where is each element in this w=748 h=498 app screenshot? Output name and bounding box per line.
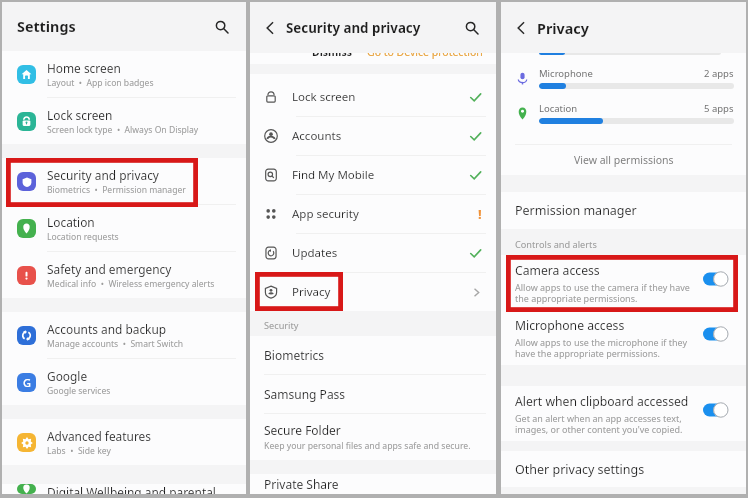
staticText: Microphone bbox=[539, 67, 704, 80]
staticText: Labs • Side key bbox=[47, 445, 111, 457]
staticText: Settings bbox=[17, 17, 76, 36]
staticText: Permission manager bbox=[515, 202, 637, 219]
button[interactable]: Digital Wellbeing and parental bbox=[2, 484, 246, 494]
staticText: 5 apps bbox=[704, 102, 734, 115]
staticText: Location requests bbox=[47, 231, 119, 243]
button[interactable]: Biometrics bbox=[250, 336, 496, 374]
button[interactable]: Camera access bbox=[501, 255, 746, 310]
staticText: Accounts and backup bbox=[47, 321, 167, 337]
staticText: Manage accounts • Smart Switch bbox=[47, 338, 184, 350]
staticText: Controls and alerts bbox=[515, 238, 597, 251]
staticText: Security and privacy bbox=[286, 19, 421, 37]
staticText: Secure Folder bbox=[264, 422, 341, 438]
button[interactable]: Location bbox=[501, 95, 746, 130]
staticText: Advanced features bbox=[47, 428, 151, 444]
button[interactable]: Safety and emergency bbox=[2, 252, 246, 298]
button[interactable]: Microphone bbox=[501, 60, 746, 95]
staticText: Location bbox=[539, 102, 704, 115]
staticText: Home screen bbox=[47, 60, 121, 76]
button[interactable]: Security and privacy bbox=[2, 158, 246, 204]
button[interactable]: Private Share bbox=[250, 474, 496, 494]
button[interactable]: Lock screen bbox=[250, 78, 496, 116]
staticText: Samsung Pass bbox=[264, 386, 346, 402]
staticText: View all permissions bbox=[574, 153, 674, 167]
staticText: Digital Wellbeing and parental bbox=[47, 484, 216, 494]
button[interactable]: Toggle Camera access bbox=[703, 271, 728, 287]
button[interactable]: Search bbox=[459, 15, 485, 41]
staticText: ! bbox=[478, 205, 482, 223]
button[interactable]: Advanced features bbox=[2, 419, 246, 465]
staticText: Find My Mobile bbox=[292, 167, 469, 183]
button[interactable]: Lock screen bbox=[2, 98, 246, 144]
button[interactable]: Alert when clipboard accessed bbox=[501, 386, 746, 441]
staticText: Microphone access bbox=[515, 317, 625, 334]
button[interactable]: Other privacy settings bbox=[501, 451, 746, 487]
button[interactable]: Navigate up bbox=[509, 16, 533, 40]
staticText: Updates bbox=[292, 245, 469, 261]
staticText: Keep your personal files and apps safe a… bbox=[264, 440, 471, 452]
staticText: App security bbox=[292, 206, 478, 222]
staticText: Camera access bbox=[515, 262, 600, 279]
staticText: Google bbox=[47, 368, 88, 384]
button[interactable]: Accounts bbox=[250, 117, 496, 155]
staticText: Alert when clipboard accessed bbox=[515, 393, 689, 410]
staticText: Lock screen bbox=[292, 89, 469, 105]
staticText: Private Share bbox=[264, 476, 339, 492]
button[interactable]: Toggle Alert when clipboard accessed bbox=[703, 402, 728, 418]
staticText: Get an alert when an app accesses text, … bbox=[515, 412, 683, 435]
staticText: G bbox=[23, 375, 31, 390]
button[interactable]: G bbox=[2, 359, 246, 405]
button[interactable]: Privacy bbox=[250, 273, 496, 311]
staticText: Layout • App icon badges bbox=[47, 77, 154, 89]
staticText: Security bbox=[264, 319, 299, 332]
button[interactable]: Accounts and backup bbox=[2, 312, 246, 358]
button[interactable]: Home screen bbox=[2, 51, 246, 97]
staticText: Location bbox=[47, 214, 95, 230]
staticText: Biometrics • Permission manager bbox=[47, 184, 186, 196]
button[interactable]: Search bbox=[209, 14, 235, 40]
button[interactable]: Navigate up bbox=[258, 16, 282, 40]
staticText: Google services bbox=[47, 385, 111, 397]
button[interactable]: Permission manager bbox=[501, 192, 746, 229]
staticText: Screen lock type • Always On Display bbox=[47, 124, 199, 136]
staticText: Biometrics bbox=[264, 347, 325, 363]
staticText: 2 apps bbox=[704, 67, 734, 80]
staticText: Safety and emergency bbox=[47, 261, 172, 277]
staticText: Go to Device protection bbox=[367, 45, 483, 59]
staticText: Privacy bbox=[292, 284, 471, 300]
button[interactable]: Samsung Pass bbox=[250, 375, 496, 413]
staticText: Medical info • Wireless emergency alerts bbox=[47, 278, 215, 290]
button[interactable]: App security bbox=[250, 195, 496, 233]
button[interactable]: Microphone access bbox=[501, 310, 746, 365]
staticText: Allow apps to use the camera if they hav… bbox=[515, 281, 690, 304]
staticText: Accounts bbox=[292, 128, 469, 144]
staticText: Other privacy settings bbox=[515, 461, 645, 478]
staticText: Dismiss bbox=[312, 45, 353, 59]
staticText: Privacy bbox=[537, 19, 589, 38]
staticText: Security and privacy bbox=[47, 167, 159, 183]
button[interactable]: Toggle Microphone access bbox=[703, 326, 728, 342]
button[interactable]: View all permissions bbox=[501, 145, 746, 175]
staticText: Lock screen bbox=[47, 107, 113, 123]
button[interactable]: Location bbox=[2, 205, 246, 251]
staticText: Allow apps to use the microphone if they… bbox=[515, 336, 688, 359]
button[interactable]: Secure Folder bbox=[250, 414, 496, 460]
button[interactable]: Find My Mobile bbox=[250, 156, 496, 194]
button[interactable]: Updates bbox=[250, 234, 496, 272]
